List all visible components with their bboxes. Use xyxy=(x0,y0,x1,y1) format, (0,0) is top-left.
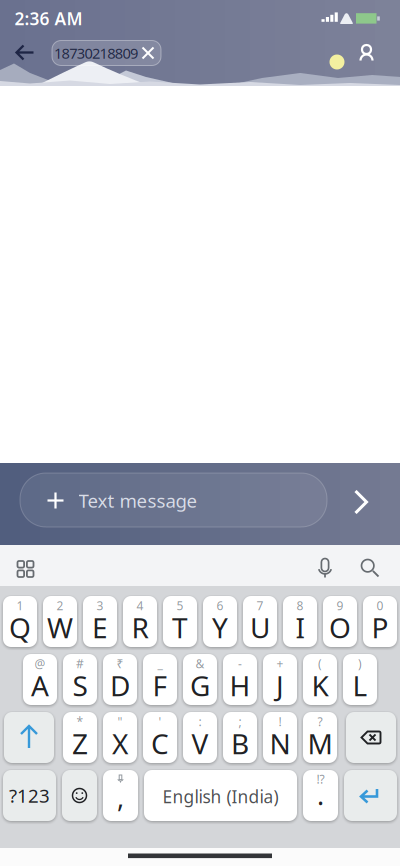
staticText: B xyxy=(231,725,249,762)
staticText: E xyxy=(92,609,108,646)
button[interactable]: ) xyxy=(343,654,377,705)
staticText: 9 xyxy=(336,597,343,613)
button[interactable]: - xyxy=(223,654,257,705)
staticText: : xyxy=(198,713,201,729)
staticText: 7 xyxy=(256,597,263,613)
button[interactable] xyxy=(12,41,37,63)
staticText: Text message xyxy=(78,488,197,513)
staticText: 4 xyxy=(136,597,143,613)
staticText: D xyxy=(110,667,130,704)
button[interactable]: Text message xyxy=(20,473,327,527)
button[interactable] xyxy=(360,558,379,577)
staticText: X xyxy=(112,725,128,762)
staticText: L xyxy=(352,667,367,704)
staticText: & xyxy=(195,655,204,671)
button[interactable]: 8 xyxy=(283,596,317,647)
button[interactable]: @ xyxy=(23,654,57,705)
staticText: S xyxy=(72,667,87,704)
staticText: ?123 xyxy=(9,783,50,808)
staticText: C xyxy=(151,725,169,762)
staticText: 3 xyxy=(96,597,103,613)
staticText: 5 xyxy=(176,597,183,613)
button[interactable]: 6 xyxy=(203,596,237,647)
staticText: 8 xyxy=(296,597,303,613)
staticText: English (India) xyxy=(162,785,278,808)
staticText: A xyxy=(31,667,49,704)
button[interactable]: _ xyxy=(143,654,177,705)
button[interactable]: 7 xyxy=(243,596,277,647)
staticText: 6 xyxy=(216,597,223,613)
staticText: T xyxy=(172,609,188,646)
button[interactable]: 4 xyxy=(123,596,157,647)
button[interactable] xyxy=(315,557,335,578)
button[interactable] xyxy=(344,770,397,821)
staticText: Q xyxy=(9,609,31,646)
staticText: _ xyxy=(157,655,162,671)
staticText: J xyxy=(276,667,284,704)
staticText: - xyxy=(238,655,242,671)
button[interactable]: + xyxy=(263,654,297,705)
staticText: R xyxy=(131,609,148,646)
button[interactable]: ₹ xyxy=(103,654,137,705)
button[interactable]: 1 xyxy=(3,596,37,647)
button[interactable]: !? xyxy=(303,770,338,821)
staticText: F xyxy=(152,667,167,704)
staticText: 0 xyxy=(376,597,383,613)
button[interactable]: " xyxy=(103,712,137,763)
staticText: 1 xyxy=(16,597,23,613)
button[interactable]: : xyxy=(183,712,217,763)
staticText: * xyxy=(76,713,83,729)
button[interactable]: ' xyxy=(143,712,177,763)
staticText: U xyxy=(250,609,270,646)
staticText: # xyxy=(76,655,84,671)
staticText: O xyxy=(329,609,351,646)
button[interactable] xyxy=(354,40,378,62)
button[interactable]: 3 xyxy=(83,596,117,647)
staticText: I xyxy=(295,609,304,646)
staticText: N xyxy=(269,725,290,762)
button[interactable]: 0 xyxy=(363,596,397,647)
staticText: + xyxy=(276,655,283,671)
staticText: W xyxy=(47,609,73,646)
button[interactable]: & xyxy=(183,654,217,705)
button[interactable]: * xyxy=(63,712,97,763)
staticText: @ xyxy=(34,655,45,671)
button[interactable]: ? xyxy=(303,712,337,763)
staticText: G xyxy=(190,667,210,704)
button[interactable] xyxy=(349,488,373,516)
button[interactable]: 2 xyxy=(43,596,77,647)
button[interactable] xyxy=(62,770,97,821)
button[interactable]: 5 xyxy=(163,596,197,647)
button[interactable] xyxy=(346,712,396,763)
staticText: ) xyxy=(358,655,362,671)
button[interactable]: , xyxy=(103,770,138,821)
staticText: 18730218809 xyxy=(54,43,138,63)
staticText: M xyxy=(307,725,332,762)
staticText: . xyxy=(317,777,324,813)
button[interactable]: ( xyxy=(303,654,337,705)
staticText: " xyxy=(117,713,122,729)
staticText: , xyxy=(117,779,124,815)
staticText: V xyxy=(191,725,208,762)
staticText: K xyxy=(311,667,328,704)
staticText: H xyxy=(229,667,250,704)
staticText: Z xyxy=(72,725,88,762)
staticText: ₹ xyxy=(116,655,123,671)
staticText: ; xyxy=(238,713,241,729)
staticText: ( xyxy=(318,655,322,671)
staticText: 2 xyxy=(56,597,63,613)
button[interactable]: English (India) xyxy=(144,770,297,821)
button[interactable]: ; xyxy=(223,712,257,763)
staticText: ' xyxy=(158,713,161,729)
button[interactable]: ?123 xyxy=(3,770,56,821)
staticText: P xyxy=(371,609,388,646)
staticText: ? xyxy=(317,713,322,729)
button[interactable]: 18730218809 xyxy=(52,40,161,65)
button[interactable]: # xyxy=(63,654,97,705)
button[interactable]: 9 xyxy=(323,596,357,647)
staticText: 2:36 AM xyxy=(14,7,82,30)
button[interactable] xyxy=(4,712,54,763)
staticText: Y xyxy=(212,609,228,646)
button[interactable]: ! xyxy=(263,712,297,763)
button[interactable] xyxy=(17,560,34,577)
